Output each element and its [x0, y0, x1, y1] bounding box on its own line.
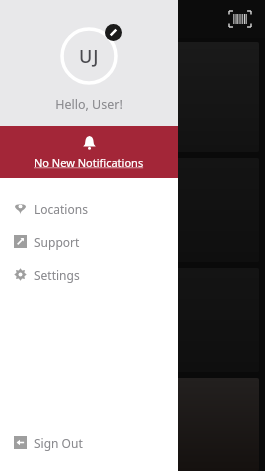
button[interactable]: Support	[0, 225, 178, 258]
button[interactable]	[6, 158, 259, 262]
staticText: Sign Out	[34, 435, 83, 451]
button[interactable]: Scan barcode	[227, 6, 253, 32]
staticText: REFER A FRIEND	[16, 52, 112, 67]
button[interactable]: REFER A FRIEND	[6, 42, 259, 152]
button[interactable]: No New Notifications	[0, 126, 178, 178]
button[interactable]: Edit profile	[105, 24, 122, 41]
button[interactable]: UJ	[55, 22, 123, 90]
staticText: No New Notifications	[34, 155, 144, 170]
staticText: UJ	[79, 44, 100, 69]
button[interactable]: Sign Out	[0, 426, 178, 459]
button[interactable]: TRAINING	[6, 268, 259, 372]
staticText: Locations	[34, 201, 88, 217]
button[interactable]: Locations	[0, 192, 178, 225]
staticText: Support	[34, 234, 80, 250]
staticText: Settings	[34, 267, 80, 283]
staticText: TRAINING	[16, 278, 77, 293]
staticText: Hello, User!	[55, 96, 123, 113]
button[interactable]: DEALS	[6, 378, 259, 471]
button[interactable]: Settings	[0, 258, 178, 291]
